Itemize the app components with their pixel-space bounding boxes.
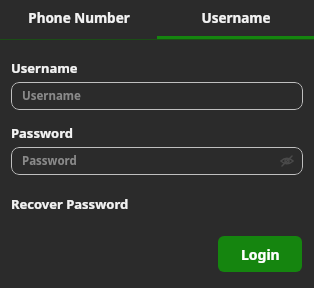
staticText: Username (201, 9, 271, 27)
staticText: Username (11, 59, 78, 77)
staticText: Password (22, 153, 77, 169)
button[interactable]: Show password (277, 151, 297, 171)
button[interactable]: Recover Password (11, 195, 129, 213)
staticText: Recover Password (11, 195, 129, 213)
button[interactable]: Login (218, 236, 302, 272)
button[interactable]: Password (11, 147, 303, 175)
button[interactable]: Phone Number (0, 0, 157, 36)
button[interactable]: Username (11, 82, 303, 110)
staticText: Phone Number (28, 9, 130, 27)
staticText: Username (22, 88, 81, 104)
staticText: Password (11, 124, 73, 142)
button[interactable]: Username (157, 0, 314, 36)
staticText: Login (241, 245, 280, 264)
